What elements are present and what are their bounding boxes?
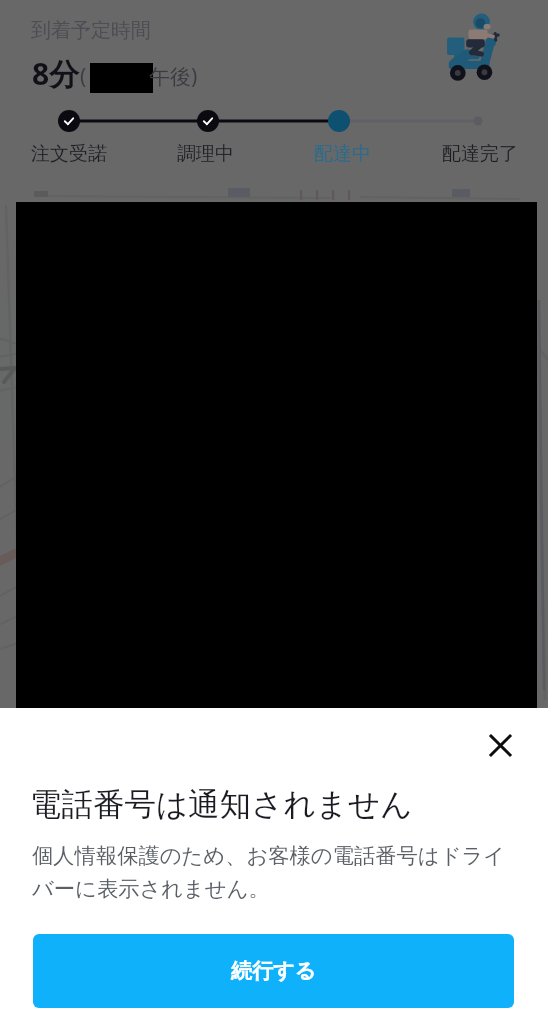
staticText: 到着予定時間 <box>31 18 151 43</box>
staticText: 個人情報保護のため、お客様の電話番号はドライ バーに表示されません。 <box>32 842 532 902</box>
staticText: 8分 <box>32 53 80 94</box>
staticText: 注文受諾 <box>31 142 107 166</box>
staticText: 調理中 <box>177 142 234 166</box>
button[interactable]: 閉じる <box>478 723 522 767</box>
staticText: 配達中 <box>314 142 371 166</box>
button[interactable]: 続行する <box>33 934 514 1008</box>
staticText: 午後) <box>149 62 198 91</box>
staticText: 続行する <box>231 958 316 984</box>
staticText: 電話番号は通知されません <box>30 785 413 825</box>
staticText: ( <box>80 62 87 91</box>
staticText: 配達完了 <box>442 142 518 166</box>
